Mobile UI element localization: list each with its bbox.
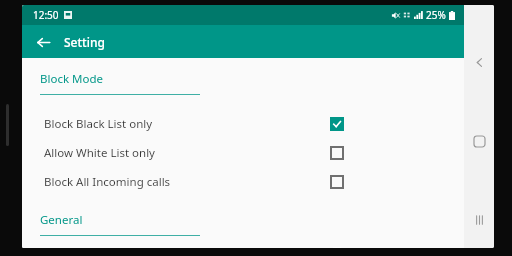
staticText: Block All Incoming calls: [44, 174, 330, 190]
staticText: General: [40, 212, 83, 228]
staticText: 12:50: [33, 8, 59, 22]
button[interactable]: Back: [464, 47, 494, 77]
staticText: Allow White List only: [44, 145, 330, 161]
button[interactable]: Home: [464, 126, 494, 156]
button[interactable]: Block Black List only: [22, 109, 464, 138]
button[interactable]: Block All Incoming calls: [22, 167, 464, 196]
staticText: Block Black List only: [44, 116, 330, 132]
staticText: 25%: [426, 8, 446, 22]
button[interactable]: Allow White List only: [22, 138, 464, 167]
button[interactable]: Back: [30, 29, 56, 55]
staticText: Setting: [64, 34, 105, 50]
button[interactable]: Recent apps: [464, 205, 494, 235]
staticText: Block Mode: [40, 71, 103, 87]
